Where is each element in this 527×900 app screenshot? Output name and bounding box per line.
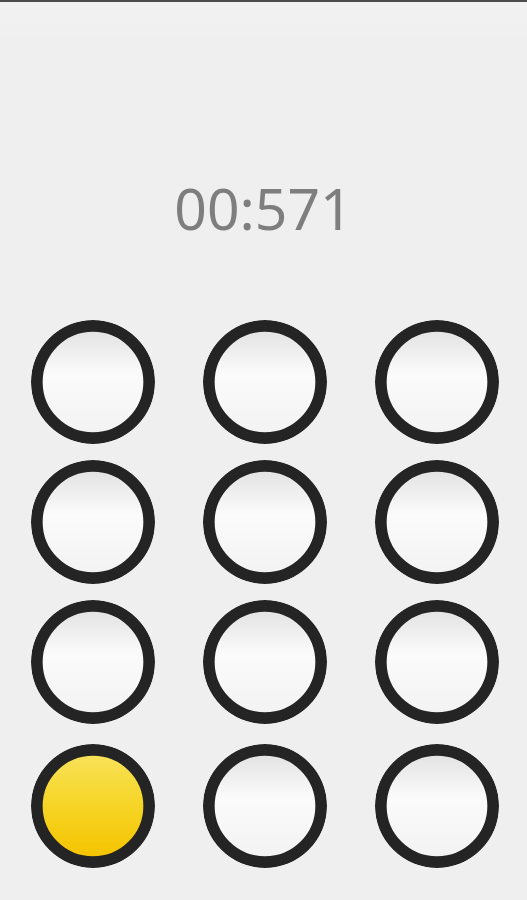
button[interactable]: Pad 6	[375, 460, 499, 584]
button[interactable]: Pad 8	[203, 600, 327, 724]
button[interactable]: Pad 7	[31, 600, 155, 724]
button[interactable]: Pad 10 active	[31, 744, 155, 868]
button[interactable]: Pad 5	[203, 460, 327, 584]
button[interactable]: Pad 9	[375, 600, 499, 724]
button[interactable]: Pad 1	[31, 320, 155, 444]
button[interactable]: Pad 3	[375, 320, 499, 444]
staticText: 00:571	[174, 169, 353, 245]
button[interactable]: Pad 2	[203, 320, 327, 444]
button[interactable]: Pad 4	[31, 460, 155, 584]
button[interactable]: Pad 12	[375, 744, 499, 868]
button[interactable]: Pad 11	[203, 744, 327, 868]
